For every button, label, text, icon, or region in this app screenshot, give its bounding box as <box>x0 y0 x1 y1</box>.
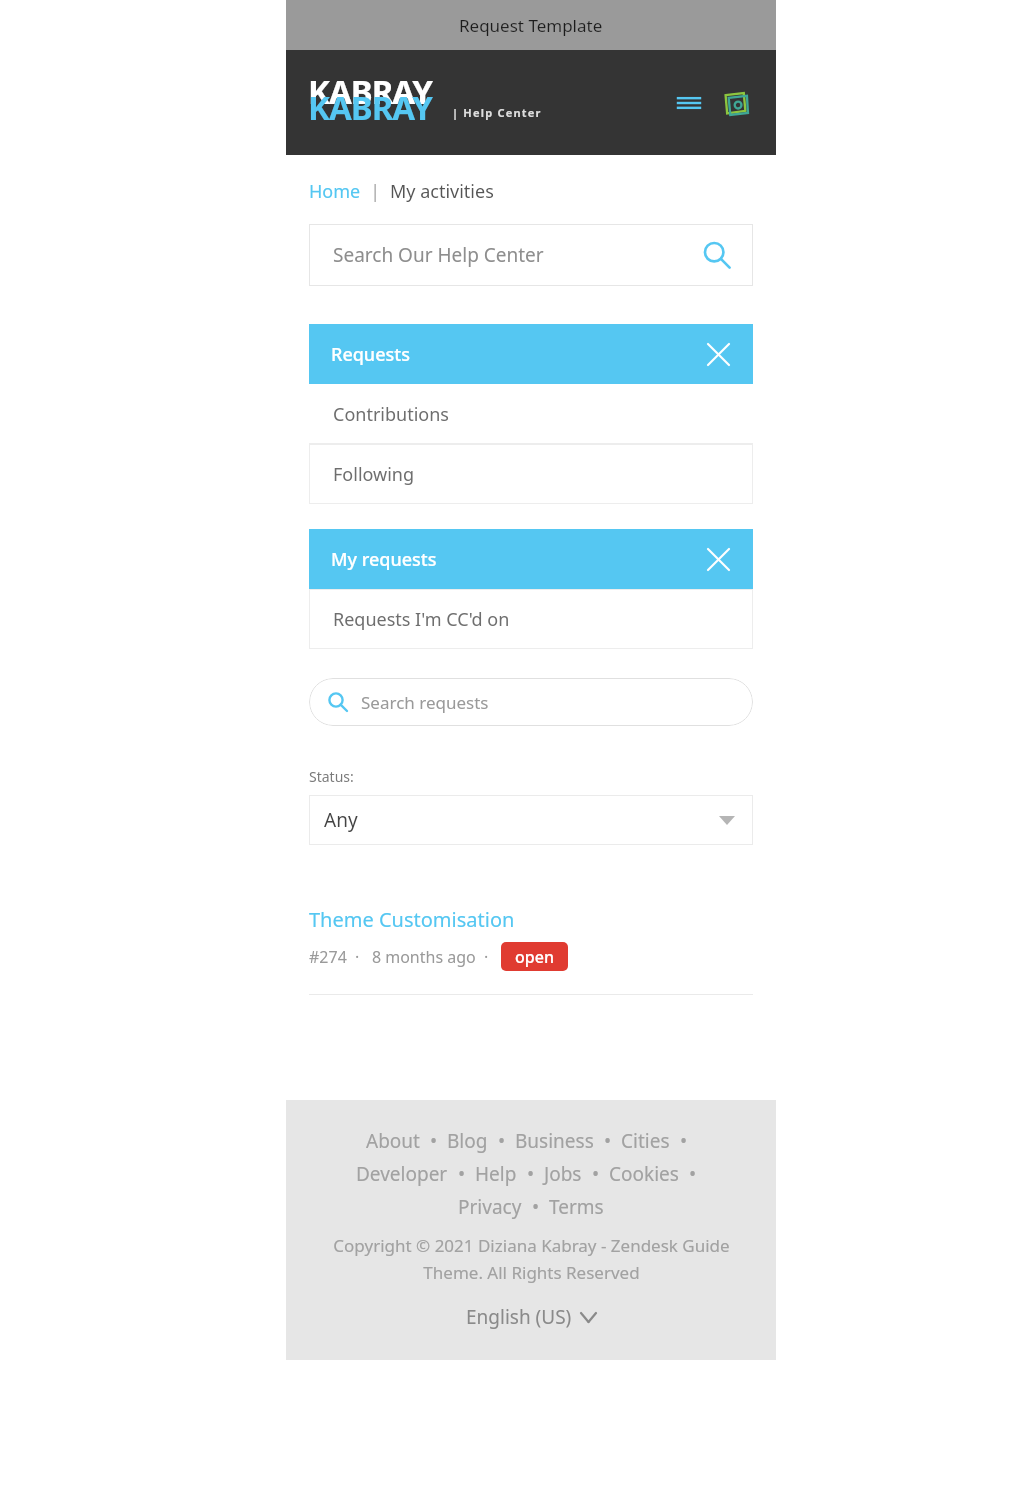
button[interactable]: Terms <box>549 1194 604 1220</box>
staticText: | Help Center <box>452 105 542 120</box>
button[interactable]: Requests I'm CC'd on <box>309 589 753 649</box>
staticText: • <box>488 1128 515 1154</box>
staticText: • <box>670 1128 697 1154</box>
button[interactable]: Cities <box>621 1128 670 1154</box>
staticText: Jobs <box>544 1161 582 1187</box>
staticText: Cookies <box>609 1161 679 1187</box>
button[interactable]: About <box>366 1128 420 1154</box>
staticText: Contributions <box>333 402 449 427</box>
button[interactable]: Home <box>309 179 361 204</box>
staticText: #274 · 8 months ago · <box>309 946 497 968</box>
button[interactable]: Requests <box>309 324 753 384</box>
button[interactable]: Jobs <box>544 1161 582 1187</box>
button[interactable]: Guide <box>718 85 754 121</box>
button[interactable]: Close My requests <box>701 542 735 576</box>
staticText: Home <box>309 179 361 204</box>
staticText: Privacy <box>458 1194 522 1220</box>
staticText: • <box>522 1194 549 1220</box>
staticText: • <box>594 1128 621 1154</box>
button[interactable]: Business <box>515 1128 594 1154</box>
button[interactable]: Contributions <box>309 384 753 444</box>
staticText: Any <box>324 807 358 833</box>
button[interactable]: Search Our Help Center <box>309 224 753 286</box>
staticText: Help <box>475 1161 517 1187</box>
button[interactable]: Any <box>309 795 753 845</box>
button[interactable]: Search requests <box>309 678 753 726</box>
button[interactable]: Blog <box>447 1128 488 1154</box>
staticText: Request Template <box>459 14 603 37</box>
button[interactable]: English (US) <box>462 1300 600 1334</box>
staticText: Status: <box>309 767 354 786</box>
staticText: Blog <box>447 1128 488 1154</box>
staticText: • <box>517 1161 544 1187</box>
staticText: Cities <box>621 1128 670 1154</box>
staticText: English (US) <box>466 1304 572 1330</box>
staticText: About <box>366 1128 420 1154</box>
button[interactable]: Menu <box>672 86 706 120</box>
staticText: Search requests <box>361 691 489 714</box>
staticText: • <box>582 1161 609 1187</box>
staticText: Requests I'm CC'd on <box>333 607 510 632</box>
button[interactable]: My activities <box>390 179 494 204</box>
staticText: Requests <box>331 342 410 367</box>
staticText: | <box>361 179 390 204</box>
staticText: KABRAY <box>308 85 432 130</box>
button[interactable]: Following <box>309 444 753 504</box>
staticText: KABRAY <box>308 69 432 114</box>
button[interactable]: Developer <box>356 1161 448 1187</box>
button[interactable]: Theme Customisation <box>309 906 515 933</box>
staticText: My activities <box>390 179 494 204</box>
button[interactable]: Cookies <box>609 1161 679 1187</box>
staticText: • <box>448 1161 475 1187</box>
staticText: My requests <box>331 547 437 572</box>
button[interactable]: My requests <box>309 529 753 589</box>
staticText: Search Our Help Center <box>333 242 544 268</box>
button[interactable]: Help <box>475 1161 517 1187</box>
staticText: • <box>679 1161 706 1187</box>
staticText: Terms <box>549 1194 604 1220</box>
staticText: Developer <box>356 1161 448 1187</box>
staticText: open <box>515 946 554 968</box>
button[interactable]: Close Requests <box>701 337 735 371</box>
staticText: Theme Customisation <box>309 906 515 933</box>
staticText: • <box>420 1128 447 1154</box>
staticText: Copyright © 2021 Diziana Kabray - Zendes… <box>333 1234 730 1284</box>
staticText: Business <box>515 1128 594 1154</box>
button[interactable]: Privacy <box>458 1194 522 1220</box>
staticText: Following <box>333 462 415 487</box>
